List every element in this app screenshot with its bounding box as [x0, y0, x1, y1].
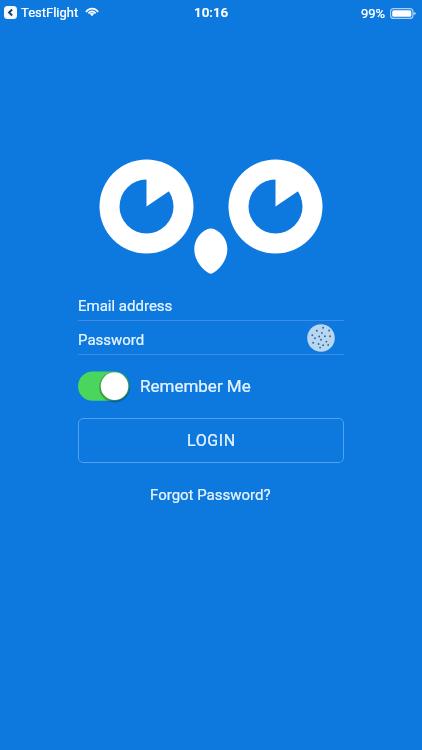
staticText: Email address — [78, 297, 173, 315]
button[interactable]: LOGIN — [78, 418, 344, 463]
staticText: Password — [78, 331, 145, 349]
staticText: TestFlight — [21, 5, 79, 20]
button[interactable]: Back to TestFlight — [4, 6, 17, 19]
staticText: Remember Me — [140, 376, 251, 396]
staticText: 99% — [361, 6, 386, 21]
button[interactable]: Email address — [78, 294, 344, 321]
button[interactable]: Fingerprint login — [306, 323, 336, 353]
button[interactable]: Password — [78, 328, 344, 355]
staticText: 10:16 — [194, 4, 229, 20]
button[interactable]: Forgot Password? — [144, 483, 277, 507]
staticText: LOGIN — [187, 431, 236, 450]
button[interactable]: Remember Me — [76, 369, 251, 403]
staticText: Forgot Password? — [150, 486, 271, 504]
